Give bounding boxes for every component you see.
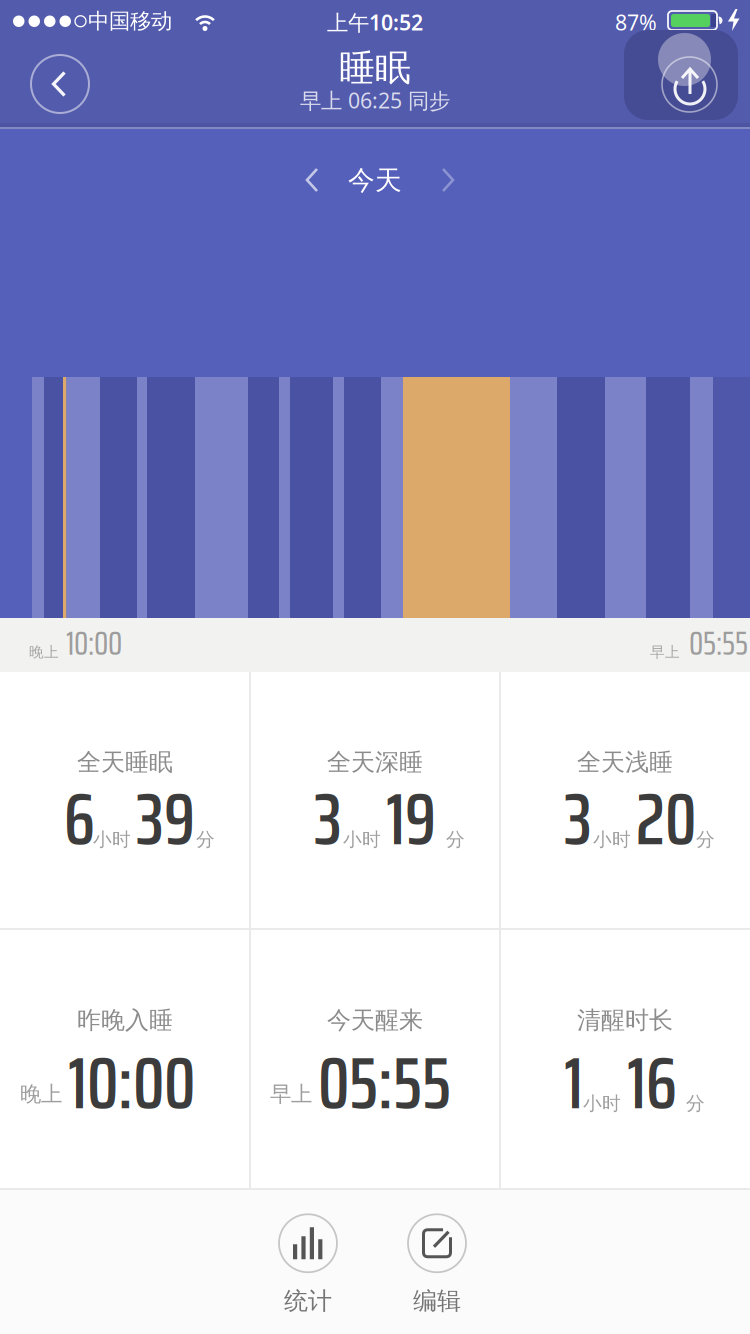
staticText: 分 bbox=[696, 828, 715, 851]
staticText: 10:00 bbox=[66, 617, 122, 669]
staticText: 小时 bbox=[593, 828, 631, 851]
staticText: 3 bbox=[564, 761, 592, 876]
staticText: 早上 06:25 同步 bbox=[300, 86, 450, 114]
staticText: 上午10:52 bbox=[327, 8, 423, 36]
staticText: 05:55 bbox=[689, 617, 748, 669]
staticText: 39 bbox=[136, 761, 195, 876]
staticText: 晚上 bbox=[29, 643, 59, 661]
staticText: 小时 bbox=[93, 828, 131, 851]
button[interactable]: Previous day bbox=[294, 157, 332, 203]
staticText: 3 bbox=[314, 761, 342, 876]
staticText: 晚上 bbox=[20, 1081, 62, 1107]
staticText: 清醒时长 bbox=[577, 1005, 673, 1035]
staticText: 6 bbox=[64, 761, 95, 876]
staticText: 今天 bbox=[348, 164, 402, 197]
staticText: 10:00 bbox=[68, 1025, 195, 1140]
staticText: 睡眠 bbox=[339, 46, 411, 90]
staticText: 中国移动 bbox=[88, 8, 172, 34]
staticText: 20 bbox=[636, 761, 696, 876]
staticText: 全天深睡 bbox=[327, 747, 423, 777]
staticText: 16 bbox=[627, 1025, 677, 1140]
staticText: 05:55 bbox=[318, 1025, 451, 1140]
staticText: 小时 bbox=[583, 1092, 621, 1115]
staticText: 分 bbox=[686, 1092, 705, 1115]
button[interactable]: 统计 bbox=[258, 1213, 358, 1317]
staticText: 编辑 bbox=[413, 1286, 461, 1316]
staticText: 早上 bbox=[650, 643, 680, 661]
staticText: 分 bbox=[196, 828, 215, 851]
staticText: 统计 bbox=[284, 1286, 332, 1316]
staticText: 分 bbox=[446, 828, 465, 851]
button[interactable]: Next day bbox=[428, 157, 466, 203]
staticText: 全天浅睡 bbox=[577, 747, 673, 777]
button[interactable]: Share bbox=[624, 30, 738, 120]
staticText: 昨晚入睡 bbox=[77, 1005, 173, 1035]
staticText: 今天醒来 bbox=[327, 1005, 423, 1035]
staticText: 19 bbox=[386, 761, 436, 876]
button[interactable]: 编辑 bbox=[387, 1213, 487, 1317]
staticText: 1 bbox=[564, 1025, 583, 1140]
button[interactable]: Back bbox=[31, 55, 89, 113]
staticText: 全天睡眠 bbox=[77, 747, 173, 777]
staticText: 87% bbox=[615, 8, 657, 36]
staticText: 小时 bbox=[343, 828, 381, 851]
staticText: 早上 bbox=[270, 1081, 312, 1107]
